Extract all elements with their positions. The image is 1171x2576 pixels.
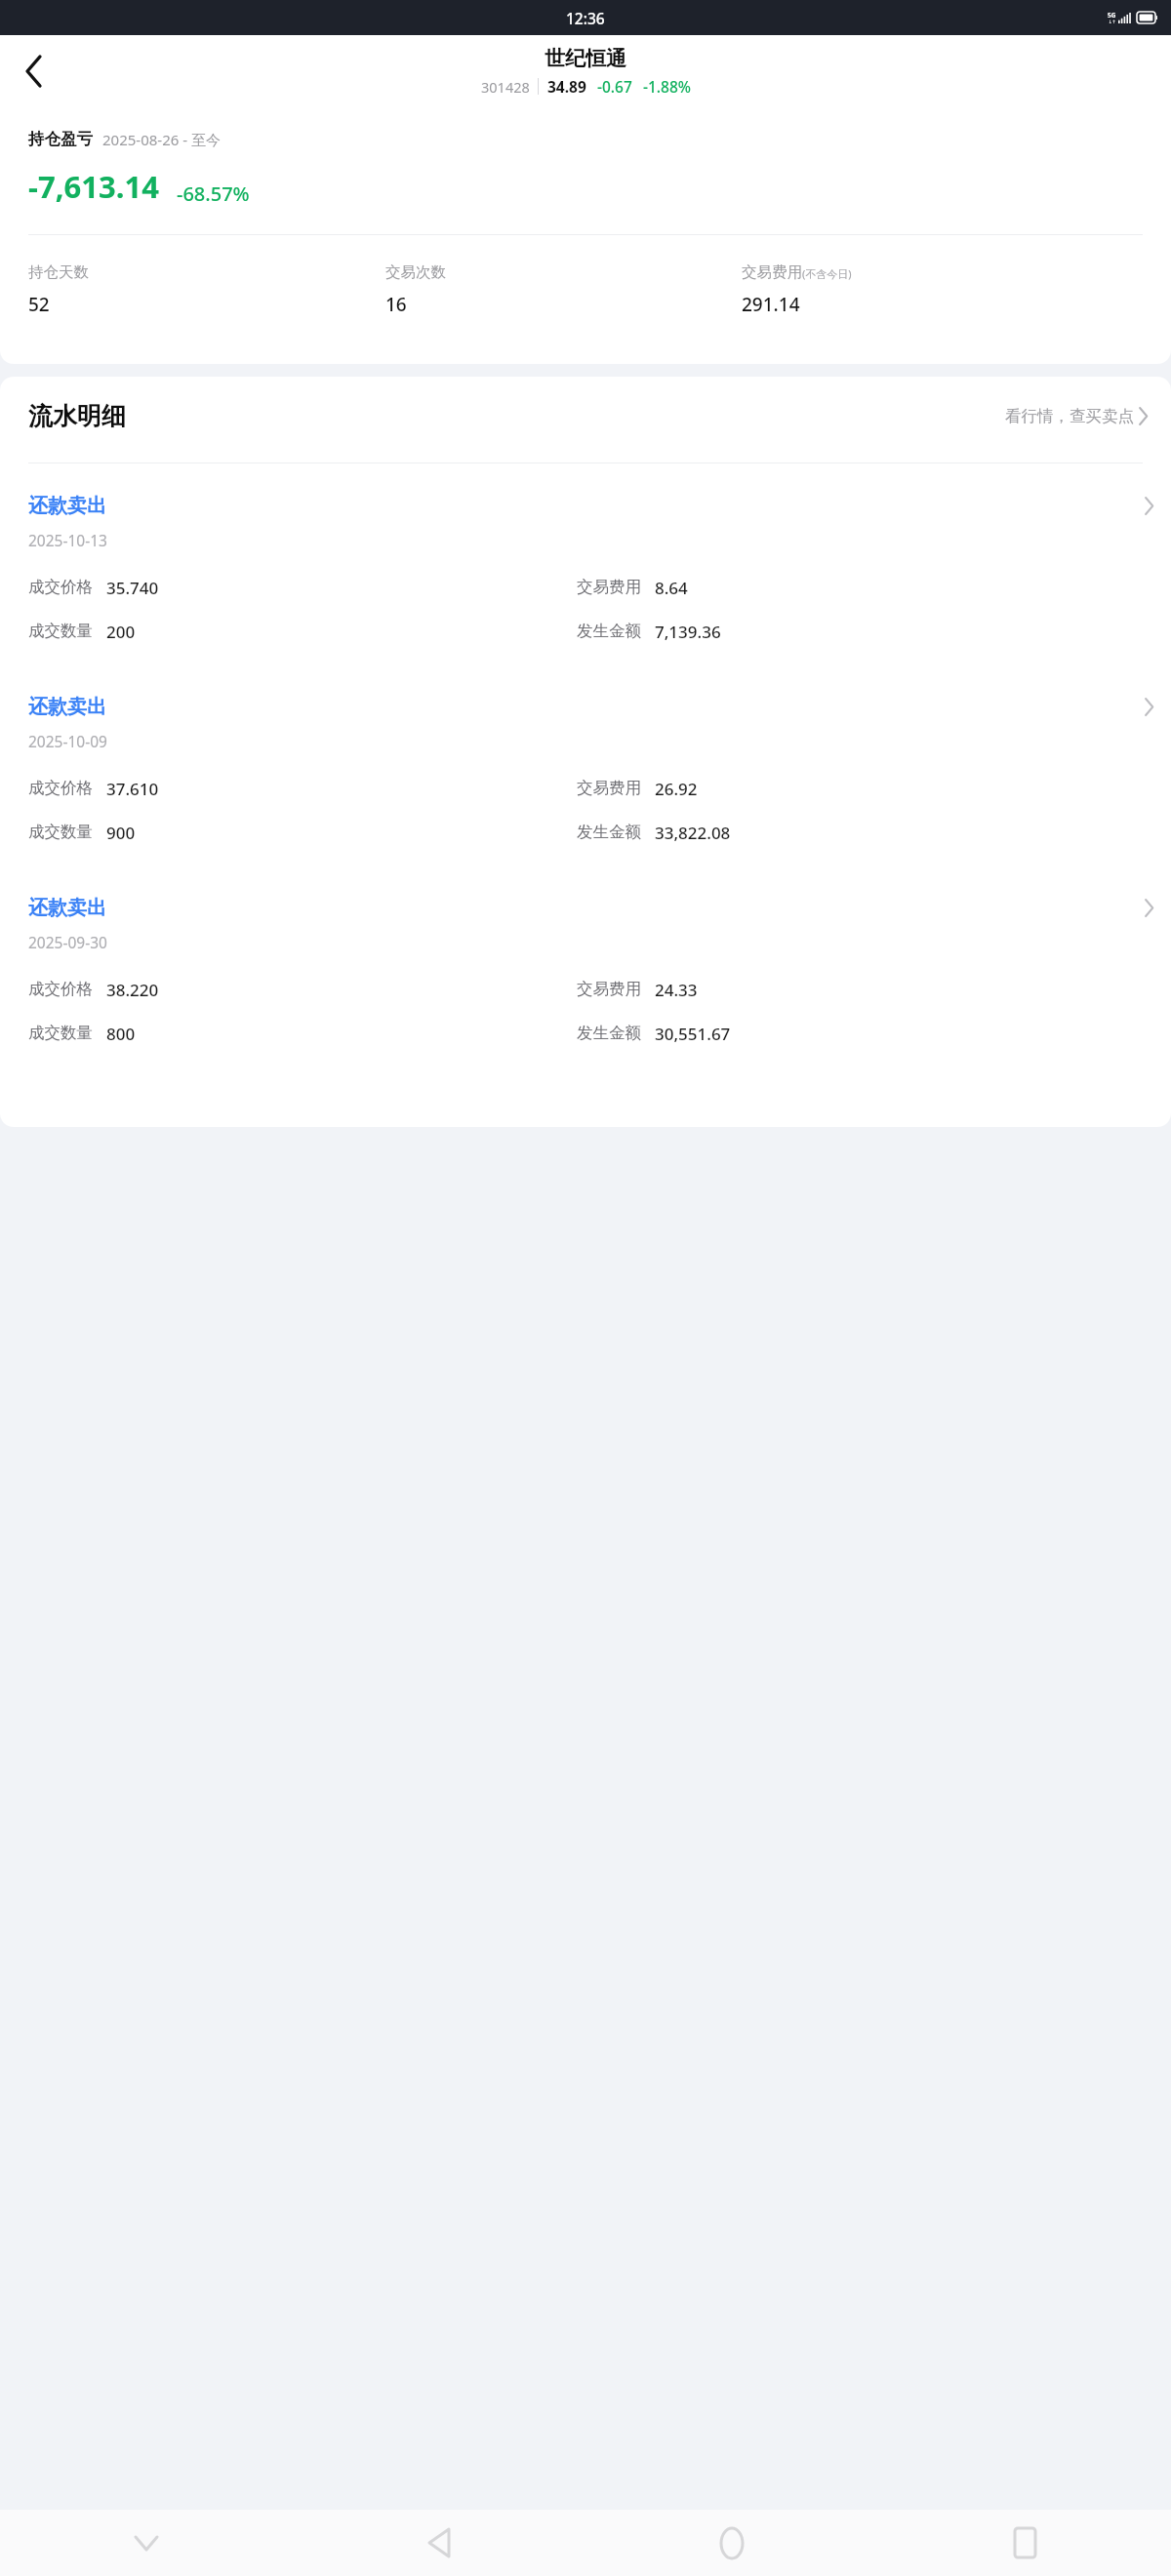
staticText: 世纪恒通 <box>545 46 626 71</box>
staticText: 37.610 <box>106 778 159 800</box>
staticText: 成交价格 <box>28 577 93 597</box>
staticText: 2025-10-13 <box>28 530 107 550</box>
staticText: 持仓盈亏 <box>28 129 93 149</box>
staticText: 34.89 <box>547 76 586 97</box>
staticText: 900 <box>106 822 136 844</box>
staticText: 7,139.36 <box>655 621 721 643</box>
button[interactable]: Back <box>8 46 59 97</box>
staticText: 52 <box>28 292 50 317</box>
staticText: (不含今日) <box>802 266 852 281</box>
staticText: 发生金额 <box>577 621 641 641</box>
staticText: 交易费用 <box>577 778 641 798</box>
button[interactable]: 看行情，查买卖点 <box>999 400 1153 432</box>
button[interactable]: Back <box>293 2510 585 2576</box>
staticText: 交易费用 <box>577 577 641 597</box>
staticText: 16 <box>385 292 407 317</box>
staticText: 成交价格 <box>28 979 93 999</box>
staticText: -0.67 <box>597 76 632 97</box>
staticText: 发生金额 <box>577 822 641 842</box>
staticText: 291.14 <box>742 292 800 317</box>
staticText: 35.740 <box>106 577 159 599</box>
staticText: 发生金额 <box>577 1023 641 1043</box>
staticText: 2025-08-26 - 至今 <box>102 130 221 149</box>
staticText: 200 <box>106 621 136 643</box>
staticText: 38.220 <box>106 979 159 1001</box>
staticText: -7,613.14 <box>28 166 159 207</box>
staticText: 还款卖出 <box>28 896 106 920</box>
button[interactable]: 还款卖出 <box>0 664 1171 865</box>
staticText: ↓↑ <box>1109 20 1116 24</box>
staticText: -68.57% <box>177 181 250 207</box>
staticText: 800 <box>106 1023 136 1045</box>
staticText: 交易费用 <box>577 979 641 999</box>
staticText: 看行情，查买卖点 <box>1005 406 1134 426</box>
button[interactable]: 还款卖出 <box>0 865 1171 1067</box>
staticText: 成交数量 <box>28 1023 93 1043</box>
staticText: 5G <box>1108 11 1116 20</box>
staticText: 33,822.08 <box>655 822 731 844</box>
staticText: 30,551.67 <box>655 1023 731 1045</box>
staticText: 26.92 <box>655 778 698 800</box>
staticText: -1.88% <box>643 76 691 97</box>
staticText: 交易费用 <box>742 262 802 282</box>
button[interactable]: Home <box>585 2510 878 2576</box>
staticText: 交易次数 <box>385 262 446 282</box>
staticText: 还款卖出 <box>28 695 106 719</box>
staticText: 8.64 <box>655 577 688 599</box>
staticText: 成交数量 <box>28 621 93 641</box>
staticText: 成交数量 <box>28 822 93 842</box>
staticText: 成交价格 <box>28 778 93 798</box>
button[interactable]: 还款卖出 <box>0 463 1171 664</box>
staticText: 持仓天数 <box>28 262 89 282</box>
staticText: 12:36 <box>566 8 605 28</box>
staticText: 2025-09-30 <box>28 932 107 952</box>
button[interactable]: Recents <box>878 2510 1171 2576</box>
staticText: 2025-10-09 <box>28 731 107 751</box>
staticText: 还款卖出 <box>28 494 106 518</box>
staticText: 301428 <box>481 77 530 97</box>
staticText: 流水明细 <box>28 401 126 431</box>
staticText: 24.33 <box>655 979 698 1001</box>
